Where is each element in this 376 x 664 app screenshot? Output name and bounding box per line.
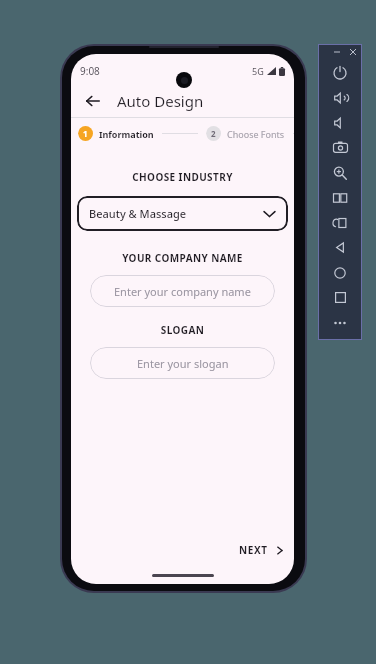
staticText: NEXT <box>239 543 268 557</box>
staticText: 5G <box>252 65 264 77</box>
button[interactable]: Back <box>80 88 106 114</box>
button[interactable]: Fold <box>318 185 362 210</box>
staticText: 1 <box>83 128 88 139</box>
staticText: Enter your slogan <box>137 356 229 371</box>
button[interactable]: 1 <box>78 123 154 144</box>
button[interactable]: NEXT <box>229 538 294 562</box>
button[interactable]: Power <box>318 60 362 85</box>
button[interactable]: Enter your slogan <box>90 347 275 379</box>
staticText: Enter your company name <box>114 284 251 299</box>
staticText: Choose Fonts <box>227 128 285 140</box>
staticText: 2 <box>211 128 216 139</box>
button[interactable]: Zoom <box>318 160 362 185</box>
button[interactable]: Back <box>318 235 362 260</box>
button[interactable]: Home <box>318 260 362 285</box>
button[interactable]: Screenshot <box>318 135 362 160</box>
staticText: 9:08 <box>80 64 100 78</box>
staticText: Beauty & Massage <box>89 206 187 221</box>
button[interactable]: Enter your company name <box>90 275 275 307</box>
staticText: YOUR COMPANY NAME <box>71 251 294 265</box>
button[interactable]: Recents <box>318 285 362 310</box>
button[interactable]: Rotate <box>318 210 362 235</box>
button[interactable]: Close <box>348 47 358 57</box>
staticText: SLOGAN <box>71 323 294 337</box>
button[interactable]: More <box>318 310 362 335</box>
button[interactable]: 2 <box>206 123 285 144</box>
button[interactable]: Volume down <box>318 110 362 135</box>
staticText: Information <box>99 128 154 140</box>
button[interactable]: Beauty & Massage <box>77 196 288 231</box>
button[interactable]: Volume up <box>318 85 362 110</box>
staticText: Auto Design <box>117 91 204 111</box>
button[interactable]: Minimize <box>332 47 342 57</box>
staticText: CHOOSE INDUSTRY <box>71 170 294 184</box>
